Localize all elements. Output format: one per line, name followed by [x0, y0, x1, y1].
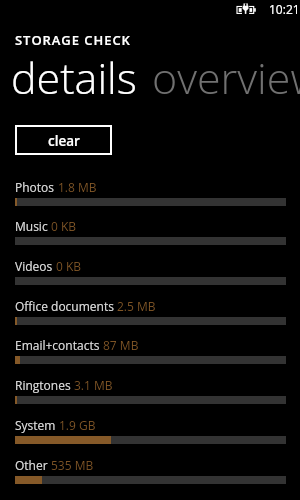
staticText: clear	[48, 132, 80, 150]
staticText: 2.5 MB	[117, 298, 156, 314]
staticText: overview	[152, 48, 300, 104]
staticText: 10:21	[269, 1, 300, 17]
other: Battery charging	[237, 1, 257, 15]
button[interactable]: Ringtones	[0, 375, 300, 410]
staticText: Music	[15, 218, 48, 234]
button[interactable]: clear	[15, 125, 112, 155]
staticText: Ringtones	[15, 377, 71, 393]
staticText: Other	[15, 457, 48, 473]
button[interactable]: Videos	[0, 256, 300, 291]
staticText: 87 MB	[103, 337, 139, 353]
staticText: Office documents	[15, 298, 114, 314]
staticText: 1.8 MB	[58, 179, 97, 195]
staticText: Email+contacts	[15, 337, 100, 353]
staticText: 3.1 MB	[74, 377, 113, 393]
staticText: Photos	[15, 179, 55, 195]
staticText: 535 MB	[51, 457, 94, 473]
staticText: 0 KB	[51, 218, 77, 234]
staticText: details	[11, 48, 137, 104]
staticText: System	[15, 417, 56, 433]
staticText: STORAGE CHECK	[15, 31, 131, 49]
button[interactable]: Music	[0, 216, 300, 251]
button[interactable]: Email+contacts	[0, 335, 300, 370]
button[interactable]: System	[0, 415, 300, 450]
staticText: 1.9 GB	[59, 417, 96, 433]
button[interactable]: Photos	[0, 177, 300, 212]
button[interactable]: Other	[0, 455, 300, 490]
staticText: 0 KB	[56, 258, 82, 274]
button[interactable]: details	[11, 48, 137, 104]
button[interactable]: Office documents	[0, 296, 300, 331]
button[interactable]: overview	[152, 48, 300, 104]
staticText: Videos	[15, 258, 53, 274]
